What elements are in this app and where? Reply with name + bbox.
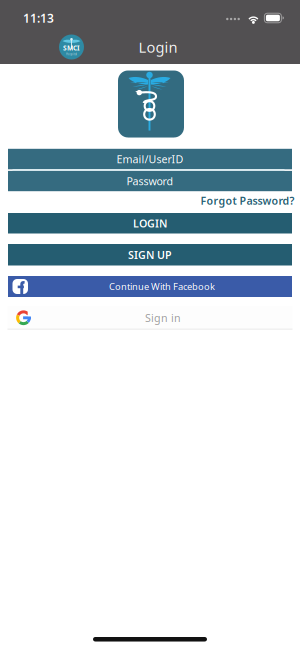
staticText: Login xyxy=(138,37,177,57)
staticText: SMCI xyxy=(63,44,80,52)
staticText: Hospital xyxy=(66,52,77,56)
staticText: LOGIN xyxy=(133,216,167,230)
staticText: 11:13 xyxy=(23,10,54,26)
button[interactable]: Sign in xyxy=(7,306,292,329)
button[interactable]: Password xyxy=(8,171,292,191)
staticText: Sign in xyxy=(145,311,181,325)
button[interactable]: Continue With Facebook xyxy=(8,276,292,297)
staticText: Password xyxy=(126,174,173,188)
button[interactable]: SIGN UP xyxy=(8,244,292,265)
button[interactable]: Forgot Password? xyxy=(200,195,300,206)
button[interactable]: Email/UserID xyxy=(8,149,292,169)
staticText: Email/UserID xyxy=(116,152,183,166)
staticText: SIGN UP xyxy=(128,248,172,262)
button[interactable]: LOGIN xyxy=(8,213,292,233)
staticText: Continue With Facebook xyxy=(109,280,215,293)
staticText: Forgot Password? xyxy=(200,193,294,208)
button[interactable]: SMCI Home xyxy=(0,30,84,63)
